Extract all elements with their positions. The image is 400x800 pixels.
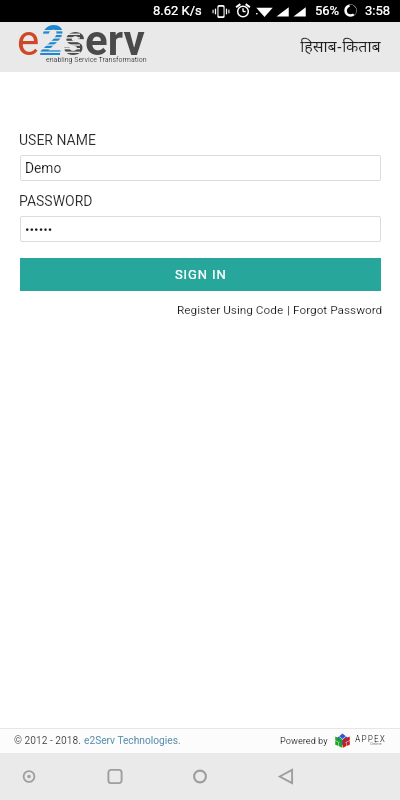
staticText: | <box>284 303 293 317</box>
button[interactable]: Register Using Code <box>177 303 284 317</box>
button[interactable]: Demo <box>20 155 381 181</box>
staticText: e <box>17 16 40 56</box>
staticText: •••••• <box>25 221 53 237</box>
staticText: © 2012 - 2018. <box>14 735 84 747</box>
staticText: PASSWORD <box>19 193 93 209</box>
button[interactable]: Assistant <box>7 753 51 800</box>
staticText: erv <box>85 16 145 56</box>
staticText: Online <box>370 741 382 746</box>
staticText: USER NAME <box>19 132 96 148</box>
staticText: 56% <box>315 3 340 18</box>
staticText: हिसाब-किताब <box>300 35 381 57</box>
staticText: s <box>64 16 85 56</box>
staticText: enabling Service Transformation <box>46 56 147 64</box>
button[interactable]: •••••• <box>20 216 381 242</box>
staticText: 3:58 <box>365 3 391 18</box>
staticText: 2 <box>40 16 64 56</box>
staticText: SIGN IN <box>175 267 227 282</box>
button[interactable]: Recents <box>93 753 137 800</box>
button[interactable]: Forgot Password <box>293 303 383 317</box>
staticText: Powered by <box>280 735 328 746</box>
button[interactable]: Home <box>178 753 222 800</box>
button[interactable]: e2Serv Technologies. <box>84 735 181 747</box>
button[interactable]: Back <box>264 753 308 800</box>
staticText: Demo <box>25 160 62 176</box>
button[interactable]: SIGN IN <box>20 258 381 291</box>
staticText: APPEX <box>355 734 386 744</box>
staticText: 8.62 K/s <box>153 3 202 18</box>
